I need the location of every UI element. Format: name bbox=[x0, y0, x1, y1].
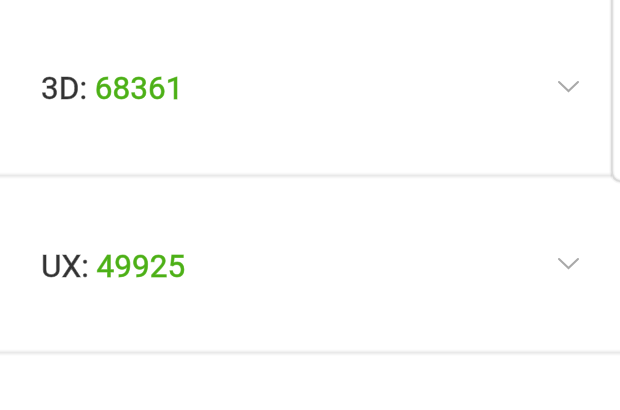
staticText: UX: 49925 bbox=[41, 248, 186, 285]
button[interactable]: Expand 3D bbox=[548, 66, 588, 106]
button[interactable]: Expand UX bbox=[548, 243, 588, 283]
button[interactable]: 3D: 68361 bbox=[0, 0, 620, 172]
staticText: UX: 49925 bbox=[41, 248, 186, 285]
button[interactable]: UX: 49925 bbox=[0, 178, 620, 350]
staticText: 3D: 68361 bbox=[41, 70, 184, 107]
staticText: 3D: 68361 bbox=[41, 70, 184, 107]
